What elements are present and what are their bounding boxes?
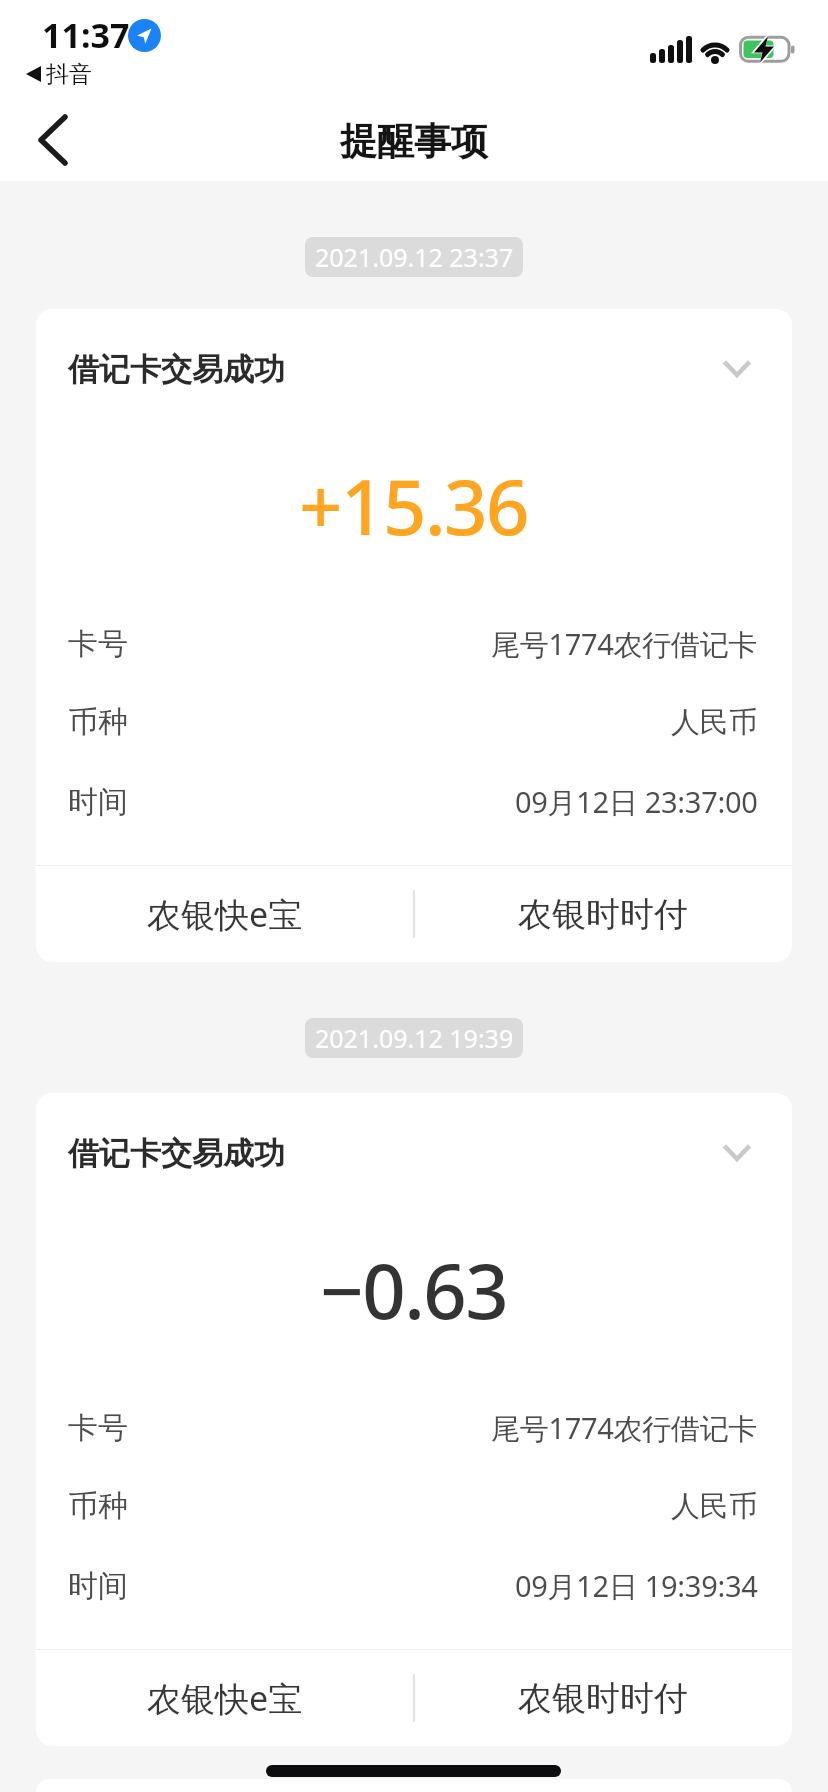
staticText: 11:37 (42, 12, 130, 58)
staticText: 人民币 (671, 704, 758, 741)
staticText: 借记卡交易成功 (68, 1134, 285, 1173)
staticText: 尾号1774农行借记卡 (491, 1408, 758, 1448)
button[interactable] (16, 102, 88, 178)
staticText: 卡号 (68, 625, 128, 663)
staticText: 农银快e宝 (147, 1675, 303, 1721)
button[interactable]: 农银时时付 (414, 1650, 792, 1746)
button[interactable]: 农银快e宝 (36, 866, 414, 962)
staticText: 抖音 (46, 60, 92, 89)
button[interactable]: 借记卡交易成功 (68, 340, 760, 398)
staticText: 农银时时付 (518, 1677, 688, 1720)
staticText: 时间 (68, 783, 128, 821)
staticText: 农银时时付 (518, 893, 688, 936)
button[interactable]: 借记卡交易成功 (68, 1124, 760, 1182)
staticText: 时间 (68, 1567, 128, 1605)
button[interactable]: 农银时时付 (414, 866, 792, 962)
staticText: −0.63 (320, 1238, 508, 1342)
staticText: 卡号 (68, 1409, 128, 1447)
staticText: 借记卡交易成功 (68, 350, 285, 389)
staticText: 提醒事项 (340, 118, 488, 165)
staticText: 币种 (68, 703, 128, 741)
staticText: 尾号1774农行借记卡 (491, 624, 758, 664)
staticText: +15.36 (299, 454, 529, 558)
staticText: 农银快e宝 (147, 891, 303, 937)
staticText: 09月12日 19:39:34 (515, 1566, 758, 1606)
staticText: 2021.09.12 19:39 (315, 1021, 514, 1055)
staticText: 2021.09.12 23:37 (315, 240, 514, 274)
staticText: 人民币 (671, 1488, 758, 1525)
button[interactable]: 农银快e宝 (36, 1650, 414, 1746)
staticText: 币种 (68, 1487, 128, 1525)
staticText: 09月12日 23:37:00 (515, 782, 758, 822)
